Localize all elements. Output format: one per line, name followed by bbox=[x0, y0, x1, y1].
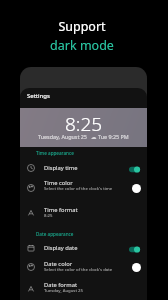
staticText: Support bbox=[58, 18, 106, 35]
staticText: Time appearance bbox=[36, 150, 74, 156]
button[interactable]: Toggle bbox=[128, 245, 140, 253]
button[interactable]: Time color bbox=[20, 176, 147, 200]
staticText: 8:25 bbox=[65, 111, 103, 137]
staticText: Display date bbox=[44, 244, 78, 252]
button[interactable]: Pick colour bbox=[132, 184, 141, 193]
button[interactable]: Time format bbox=[20, 200, 147, 226]
staticText: Tuesday, August 25 bbox=[44, 287, 83, 293]
staticText: Time color bbox=[44, 179, 73, 187]
button[interactable]: Toggle bbox=[128, 165, 140, 173]
button[interactable]: Date color bbox=[20, 256, 147, 278]
staticText: Select the color of the clock's time bbox=[44, 185, 113, 191]
staticText: Date appearance bbox=[36, 231, 74, 237]
staticText: dark mode bbox=[50, 37, 114, 54]
button[interactable]: Display time bbox=[20, 160, 147, 176]
button[interactable]: Date format bbox=[20, 278, 147, 300]
staticText: Tuesday, August 25 ☁ Tue 9:25 PM bbox=[38, 133, 129, 140]
staticText: Time format bbox=[44, 206, 78, 214]
staticText: Date color bbox=[44, 260, 73, 268]
staticText: Display time bbox=[44, 164, 78, 172]
staticText: 8:25 bbox=[44, 212, 53, 218]
staticText: Date format bbox=[44, 281, 78, 289]
button[interactable]: Pick colour bbox=[132, 263, 141, 272]
staticText: Select the color of the clock's date bbox=[44, 266, 113, 272]
staticText: Settings bbox=[27, 92, 50, 100]
button[interactable]: Display date bbox=[20, 240, 147, 256]
